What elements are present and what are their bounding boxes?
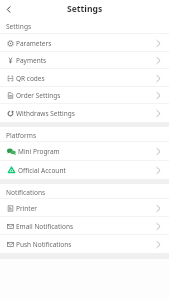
button[interactable]: Printer: [0, 199, 169, 217]
staticText: QR codes: [16, 74, 45, 83]
button[interactable]: Parameters: [0, 34, 169, 52]
button[interactable]: Official Account: [0, 161, 169, 179]
staticText: Notifications: [6, 188, 46, 197]
button[interactable]: Mini Program: [0, 142, 169, 161]
button[interactable]: Withdraws Settings: [0, 104, 169, 122]
staticText: Printer: [16, 204, 38, 213]
staticText: Payments: [16, 56, 47, 65]
button[interactable]: Back: [0, 1, 17, 18]
staticText: Settings: [67, 3, 103, 15]
button[interactable]: Payments: [0, 52, 169, 69]
button[interactable]: QR codes: [0, 69, 169, 87]
staticText: Order Settings: [16, 91, 61, 100]
staticText: Email Notifications: [16, 222, 74, 231]
staticText: Push Notifications: [16, 240, 72, 249]
staticText: Settings: [6, 22, 32, 31]
staticText: Withdraws Settings: [16, 109, 75, 118]
button[interactable]: Email Notifications: [0, 217, 169, 235]
button[interactable]: Push Notifications: [0, 235, 169, 253]
button[interactable]: Order Settings: [0, 87, 169, 104]
staticText: Mini Program: [18, 147, 60, 156]
staticText: Parameters: [16, 39, 52, 48]
staticText: Official Account: [18, 166, 66, 175]
staticText: Platforms: [6, 131, 37, 140]
